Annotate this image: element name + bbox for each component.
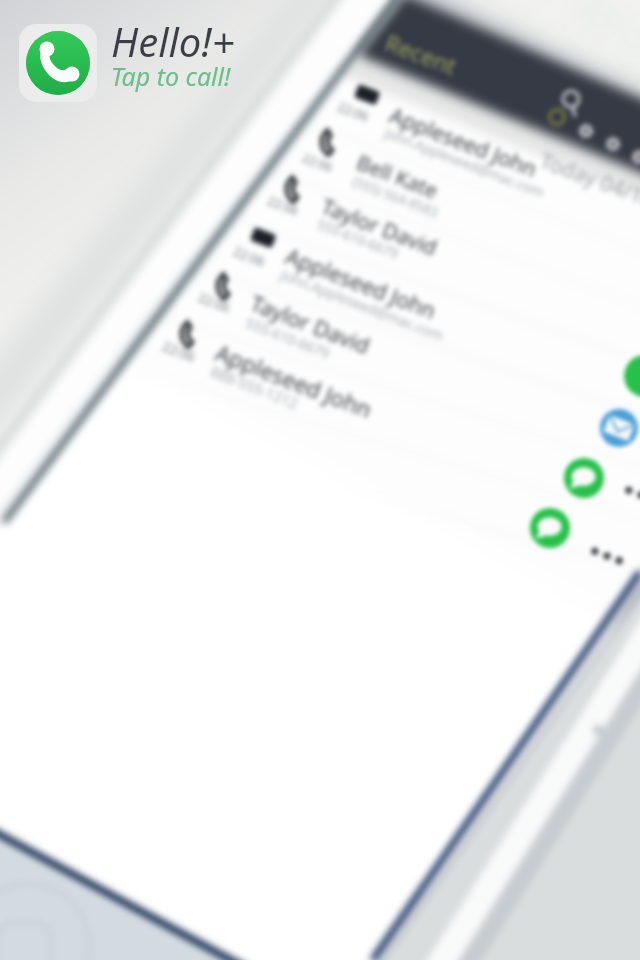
staticText: Hello!+ xyxy=(111,14,235,68)
button[interactable]: Hello!+ xyxy=(19,19,235,107)
staticText: Tap to call! xyxy=(111,59,231,93)
